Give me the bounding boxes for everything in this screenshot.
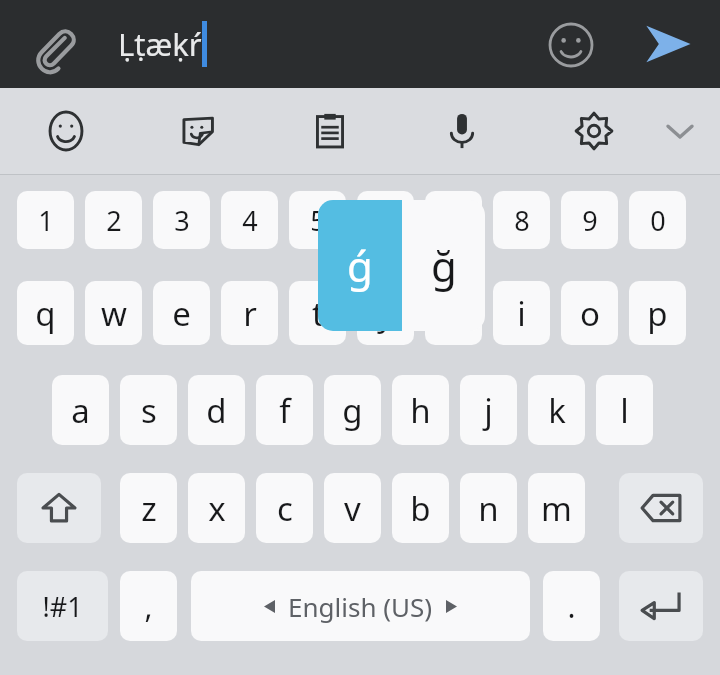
button[interactable]: Attach file <box>22 14 84 76</box>
button[interactable]: Stickers <box>169 102 227 160</box>
staticText: l <box>620 388 629 433</box>
button[interactable]: k <box>528 375 585 445</box>
staticText: h <box>410 388 431 433</box>
button[interactable]: f <box>256 375 313 445</box>
button[interactable]: i <box>493 281 550 345</box>
button[interactable]: w <box>85 281 142 345</box>
button[interactable]: d <box>188 375 245 445</box>
button[interactable]: e <box>153 281 210 345</box>
staticText: b <box>410 486 431 531</box>
button[interactable]: 3 <box>153 191 210 249</box>
staticText: e <box>172 291 191 336</box>
button[interactable]: a <box>52 375 109 445</box>
staticText: Ḷṭæḳŕ <box>118 23 202 65</box>
staticText: , <box>144 586 153 627</box>
button[interactable]: t <box>289 281 346 345</box>
button[interactable]: 8 <box>493 191 550 249</box>
button[interactable]: q <box>17 281 74 345</box>
button[interactable]: 7 <box>425 191 482 249</box>
button[interactable]: Backspace <box>619 473 703 543</box>
button[interactable]: Settings <box>565 102 623 160</box>
button[interactable]: ǵ <box>318 200 402 331</box>
staticText: y <box>377 291 394 336</box>
button[interactable]: 5 <box>289 191 346 249</box>
button[interactable]: 9 <box>561 191 618 249</box>
staticText: s <box>141 388 157 433</box>
button[interactable]: y <box>357 281 414 345</box>
button[interactable]: j <box>460 375 517 445</box>
staticText: !#1 <box>42 588 83 625</box>
button[interactable]: n <box>460 473 517 543</box>
staticText: q <box>35 291 56 336</box>
button[interactable]: Clipboard <box>301 102 359 160</box>
button[interactable]: p <box>629 281 686 345</box>
button[interactable]: l <box>596 375 653 445</box>
button[interactable]: Voice input <box>433 102 491 160</box>
button[interactable]: Emoji keyboard <box>37 102 95 160</box>
staticText: 3 <box>174 202 190 239</box>
staticText: n <box>478 486 499 531</box>
button[interactable]: b <box>392 473 449 543</box>
staticText: g <box>342 388 363 433</box>
staticText: 2 <box>106 202 122 239</box>
staticText: r <box>243 291 257 336</box>
staticText: 1 <box>38 202 54 239</box>
button[interactable]: !#1 <box>17 571 108 641</box>
button[interactable]: s <box>120 375 177 445</box>
button[interactable]: English (US) <box>191 571 530 641</box>
button[interactable]: v <box>324 473 381 543</box>
button[interactable]: ğ <box>402 200 485 331</box>
button[interactable]: z <box>120 473 177 543</box>
staticText: w <box>101 291 127 336</box>
button[interactable]: m <box>528 473 585 543</box>
button[interactable]: r <box>221 281 278 345</box>
staticText: v <box>344 486 361 531</box>
staticText: t <box>312 291 324 336</box>
button[interactable]: Shift <box>17 473 101 543</box>
button[interactable]: Enter <box>619 571 703 641</box>
staticText: a <box>71 388 90 433</box>
button[interactable]: Emoji <box>541 15 601 75</box>
staticText: 0 <box>650 202 666 239</box>
button[interactable]: 4 <box>221 191 278 249</box>
staticText: ğ <box>431 237 457 294</box>
staticText: o <box>580 291 600 336</box>
button[interactable]: , <box>120 571 177 641</box>
staticText: j <box>484 388 493 433</box>
button[interactable]: . <box>543 571 600 641</box>
button[interactable]: Send <box>636 13 698 75</box>
staticText: u <box>443 291 464 336</box>
button[interactable]: x <box>188 473 245 543</box>
staticText: d <box>206 388 227 433</box>
staticText: k <box>548 388 566 433</box>
button[interactable]: h <box>392 375 449 445</box>
staticText: 4 <box>242 202 258 239</box>
staticText: ǵ <box>347 237 373 294</box>
staticText: 5 <box>310 202 326 239</box>
staticText: 9 <box>582 202 598 239</box>
staticText: p <box>647 291 668 336</box>
button[interactable]: Collapse toolbar <box>651 102 709 160</box>
button[interactable]: g <box>324 375 381 445</box>
staticText: m <box>541 486 572 531</box>
staticText: c <box>277 486 293 531</box>
staticText: English (US) <box>288 589 433 624</box>
button[interactable]: 6 <box>357 191 414 249</box>
button[interactable]: o <box>561 281 618 345</box>
staticText: i <box>517 291 526 336</box>
button[interactable]: 1 <box>17 191 74 249</box>
staticText: . <box>567 586 576 627</box>
button[interactable]: c <box>256 473 313 543</box>
button[interactable]: 0 <box>629 191 686 249</box>
button[interactable]: u <box>425 281 482 345</box>
staticText: 8 <box>514 202 530 239</box>
staticText: x <box>208 486 226 531</box>
staticText: z <box>141 486 157 531</box>
staticText: f <box>279 388 291 433</box>
button[interactable]: 2 <box>85 191 142 249</box>
